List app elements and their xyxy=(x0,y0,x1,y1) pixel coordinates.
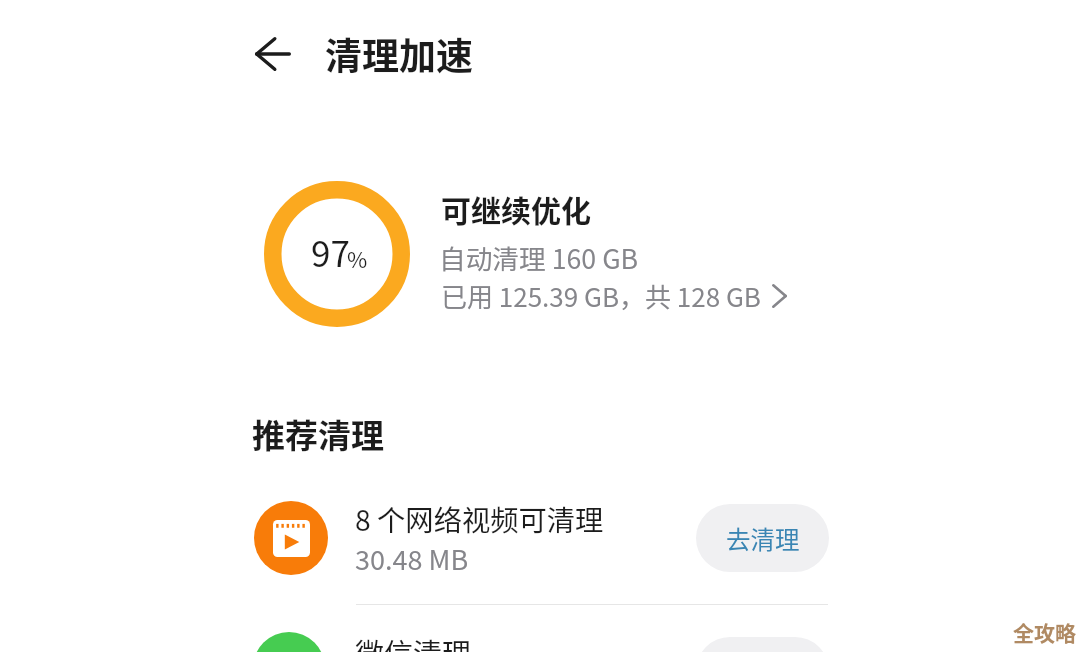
staticText: 微信清理 xyxy=(355,631,472,652)
staticText: % xyxy=(347,242,368,274)
button[interactable]: 去清理 xyxy=(696,504,829,572)
button[interactable]: 去清理 xyxy=(696,637,829,652)
staticText: 去清理 xyxy=(726,521,800,556)
button[interactable]: 可继续优化 xyxy=(441,187,591,230)
staticText: 全攻略 xyxy=(1013,617,1076,647)
staticText: 自动清理 160 GB xyxy=(439,238,639,277)
button[interactable]: 8 个网络视频可清理 xyxy=(240,490,840,602)
staticText: 推荐清理 xyxy=(252,410,384,458)
staticText: 已用 125.39 GB，共 128 GB xyxy=(441,277,761,315)
button[interactable]: 微信清理 xyxy=(240,606,840,652)
staticText: 30.48 MB xyxy=(355,539,469,578)
staticText: 8 个网络视频可清理 xyxy=(355,498,604,539)
button[interactable]: 清理加速 xyxy=(325,27,473,81)
staticText: 97 xyxy=(311,226,350,277)
button[interactable]: 已用 125.39 GB，共 128 GB xyxy=(441,277,787,315)
button[interactable]: Back xyxy=(239,20,307,88)
